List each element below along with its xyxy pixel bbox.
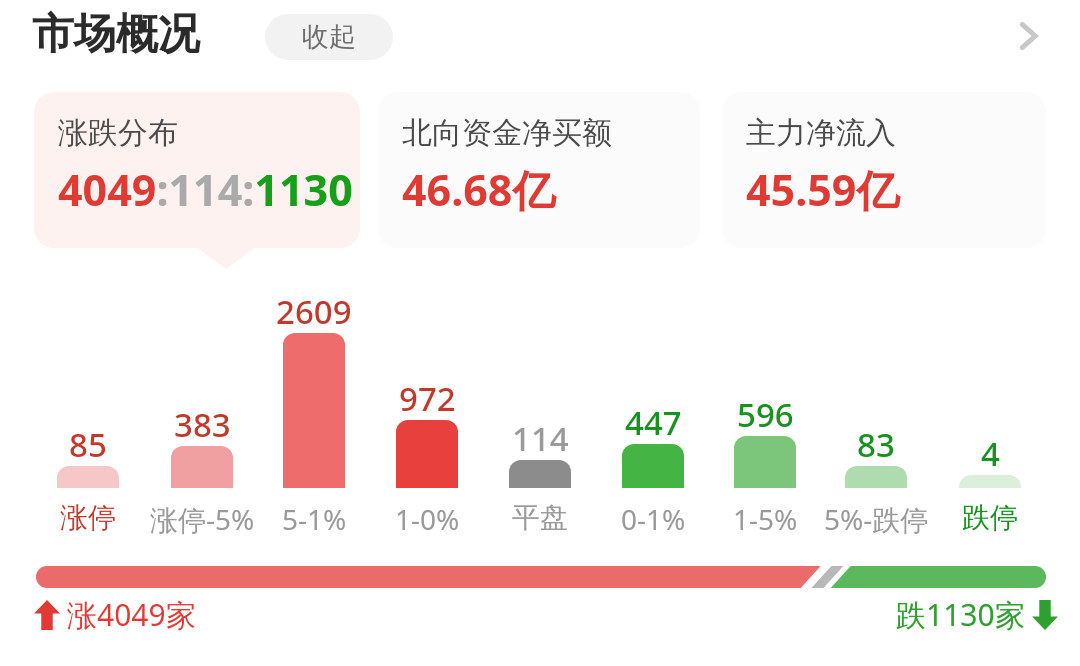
staticText: 5-1% — [282, 500, 347, 538]
button[interactable]: 1-5% — [685, 500, 845, 538]
staticText: 85 — [69, 422, 107, 467]
staticText: 涨跌分布 — [58, 114, 178, 152]
button[interactable]: 收起 — [265, 14, 393, 60]
staticText: 涨停-5% — [150, 500, 255, 538]
staticText: 83 — [857, 422, 895, 467]
staticText: 跌1130家 — [896, 594, 1025, 635]
staticText: 2609 — [276, 289, 352, 334]
staticText: 972 — [399, 376, 456, 421]
staticText: 主力净流入 — [746, 114, 896, 152]
staticText: 1-0% — [395, 500, 460, 538]
button[interactable]: 0-1% — [573, 500, 733, 538]
button[interactable]: More — [1000, 8, 1056, 64]
button[interactable]: 5-1% — [234, 500, 394, 538]
staticText: 涨停 — [60, 500, 116, 535]
staticText: 114 — [512, 416, 569, 461]
button[interactable]: 主力净流入 — [722, 92, 1046, 248]
staticText: 4049:114:1130 — [58, 160, 353, 219]
staticText: 46.68亿 — [402, 160, 556, 219]
staticText: 596 — [737, 392, 794, 437]
staticText: 市场概况 — [32, 8, 200, 61]
button[interactable]: 北向资金净买额 — [378, 92, 700, 248]
staticText: 跌停 — [962, 500, 1018, 535]
button[interactable]: 1-0% — [347, 500, 507, 538]
button[interactable]: 5%-跌停 — [796, 500, 956, 538]
button[interactable]: 平盘 — [460, 500, 620, 535]
staticText: 4 — [981, 431, 1000, 476]
button[interactable]: 跌1130家 — [896, 594, 1058, 635]
staticText: 447 — [625, 400, 682, 445]
staticText: 45.59亿 — [746, 160, 900, 219]
staticText: 0-1% — [621, 500, 686, 538]
button[interactable]: 涨4049家 — [34, 594, 196, 635]
staticText: 5%-跌停 — [824, 500, 929, 538]
button[interactable]: 涨停-5% — [122, 500, 282, 538]
staticText: 涨4049家 — [67, 594, 196, 635]
staticText: 收起 — [302, 20, 356, 54]
staticText: 383 — [174, 402, 231, 447]
button[interactable]: 涨停 — [8, 500, 168, 535]
staticText: 平盘 — [512, 500, 568, 535]
button[interactable]: 市场概况 — [30, 8, 202, 61]
staticText: 1-5% — [733, 500, 798, 538]
button[interactable]: 跌停 — [910, 500, 1070, 535]
button[interactable]: 涨跌分布 — [34, 92, 360, 248]
staticText: 北向资金净买额 — [402, 114, 612, 152]
